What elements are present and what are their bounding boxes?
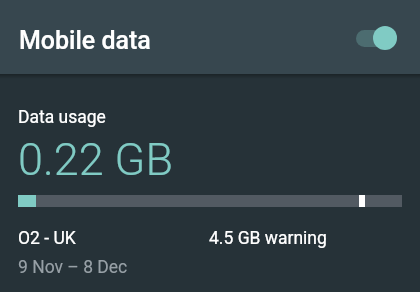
button[interactable]: Mobile data on (345, 21, 397, 55)
staticText: 0.22 GB (18, 133, 173, 186)
staticText: Data usage (18, 107, 106, 128)
staticText: 9 Nov – 8 Dec (18, 257, 128, 278)
staticText: O2 - UK (18, 228, 76, 249)
button[interactable]: Data usage (0, 79, 420, 292)
staticText: 4.5 GB warning (209, 228, 327, 249)
staticText: Mobile data (19, 26, 151, 55)
